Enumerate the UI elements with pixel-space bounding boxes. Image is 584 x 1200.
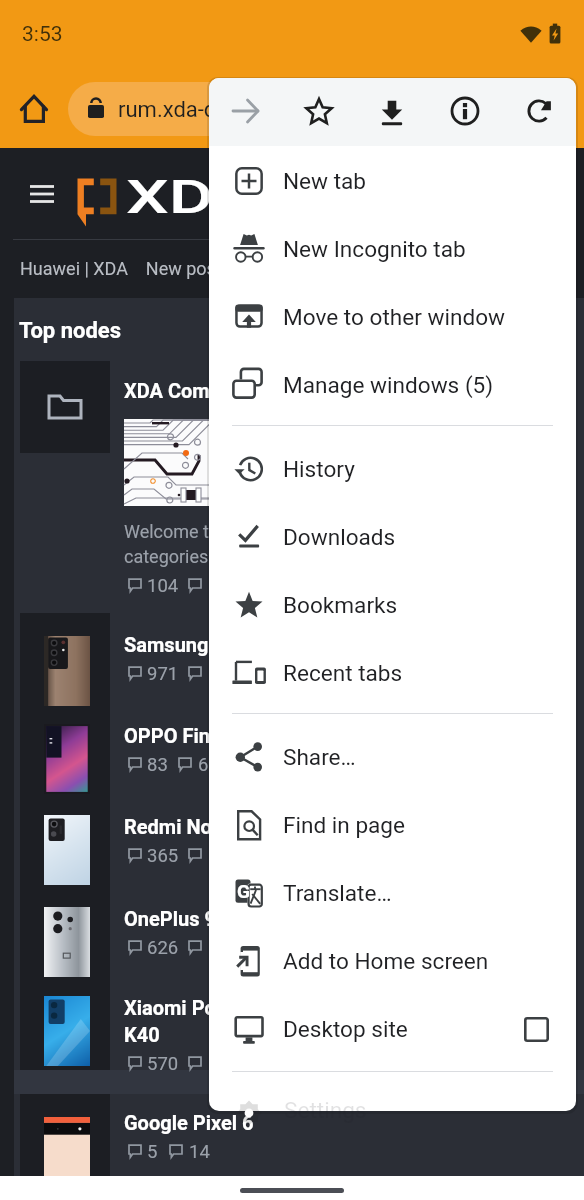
button[interactable]: Forward bbox=[209, 78, 283, 146]
button[interactable] bbox=[209, 351, 576, 419]
staticText: 626 bbox=[147, 937, 179, 959]
staticText: Huawei | XDA New posts bbox=[20, 258, 232, 279]
button[interactable] bbox=[209, 147, 576, 215]
staticText: XDA bbox=[126, 170, 258, 224]
staticText: Settings bbox=[284, 1097, 367, 1123]
staticText: Move to other window bbox=[283, 304, 506, 330]
staticText: Xiaomi Poco bbox=[124, 996, 238, 1019]
staticText: rum.xda-developers.com bbox=[118, 97, 360, 123]
staticText: Samsung Galaxy S bbox=[124, 633, 292, 656]
staticText: Top nodes bbox=[19, 318, 122, 344]
staticText: New tab bbox=[283, 168, 367, 194]
staticText: 5 bbox=[147, 1141, 158, 1163]
button[interactable] bbox=[209, 859, 576, 927]
staticText: Desktop site bbox=[283, 1016, 408, 1042]
staticText: Redmi Note 10 Pro bbox=[124, 815, 294, 838]
staticText: XDA Community bbox=[124, 379, 272, 402]
button[interactable] bbox=[68, 82, 528, 136]
staticText: Bookmarks bbox=[283, 592, 398, 618]
staticText: OPPO Find X3 Pro bbox=[124, 724, 287, 747]
staticText: Translate… bbox=[283, 880, 392, 906]
staticText: OnePlus 9 Pro bbox=[124, 907, 253, 930]
staticText: New Incognito tab bbox=[283, 236, 466, 262]
staticText: Manage windows (5) bbox=[283, 372, 494, 398]
staticText: 971 bbox=[147, 663, 179, 685]
staticText: Find in page bbox=[283, 812, 406, 838]
staticText: G bbox=[237, 880, 250, 902]
button[interactable] bbox=[209, 639, 576, 707]
button[interactable]: Page info bbox=[431, 78, 505, 146]
button[interactable] bbox=[209, 503, 576, 571]
staticText: History bbox=[283, 456, 355, 482]
staticText: Welcome to XDA categories for all bbox=[124, 521, 259, 567]
button[interactable]: Reload bbox=[505, 78, 576, 146]
staticText: 3:53 bbox=[22, 22, 63, 47]
button[interactable] bbox=[209, 435, 576, 503]
staticText: 61 bbox=[198, 754, 219, 776]
staticText: 365 bbox=[147, 845, 179, 867]
staticText: 14 bbox=[189, 1141, 210, 1163]
button[interactable]: Bookmark this page bbox=[283, 78, 357, 146]
button[interactable]: Download page bbox=[357, 78, 431, 146]
staticText: Recent tabs bbox=[283, 660, 403, 686]
staticText: K40 bbox=[124, 1023, 160, 1046]
staticText: 570 bbox=[147, 1053, 179, 1075]
staticText: Share… bbox=[283, 744, 356, 770]
button[interactable] bbox=[209, 723, 576, 791]
staticText: Google Pixel 6 bbox=[124, 1111, 254, 1134]
button[interactable] bbox=[209, 791, 576, 859]
staticText: Add to Home screen bbox=[283, 948, 489, 974]
button[interactable] bbox=[209, 571, 576, 639]
button[interactable] bbox=[209, 283, 576, 351]
staticText: 83 bbox=[147, 754, 168, 776]
staticText: 104 bbox=[147, 575, 179, 597]
staticText: Downloads bbox=[283, 524, 396, 550]
button[interactable] bbox=[209, 995, 576, 1063]
button[interactable]: Home bbox=[16, 92, 52, 128]
button[interactable] bbox=[209, 215, 576, 283]
button[interactable] bbox=[209, 927, 576, 995]
